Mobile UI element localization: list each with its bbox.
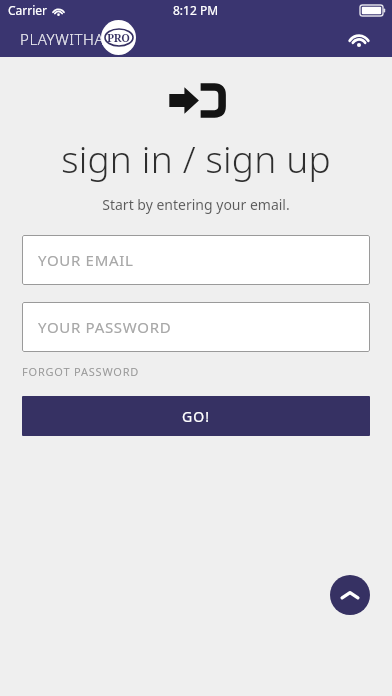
button[interactable]: FORGOT PASSWORD (22, 364, 140, 379)
staticText: Carrier (8, 2, 48, 18)
button[interactable]: PLAYWITHA (20, 29, 133, 49)
staticText: PLAYWITHA (20, 29, 105, 49)
staticText: : (129, 29, 133, 49)
other: Sign in (167, 79, 225, 122)
staticText: GO! (182, 407, 210, 426)
staticText: YOUR PASSWORD (38, 317, 172, 337)
button[interactable]: GO! (22, 396, 370, 436)
staticText: PRO (107, 30, 130, 45)
staticText: Start by entering your email. (102, 195, 290, 214)
button[interactable]: YOUR PASSWORD (22, 302, 370, 352)
staticText: YOUR EMAIL (38, 250, 134, 270)
staticText: 8:12 PM (173, 2, 219, 18)
staticText: sign in / sign up (61, 133, 331, 183)
button[interactable]: Scroll to top (330, 575, 370, 615)
button[interactable]: YOUR EMAIL (22, 235, 370, 285)
other: Network status (348, 30, 370, 47)
